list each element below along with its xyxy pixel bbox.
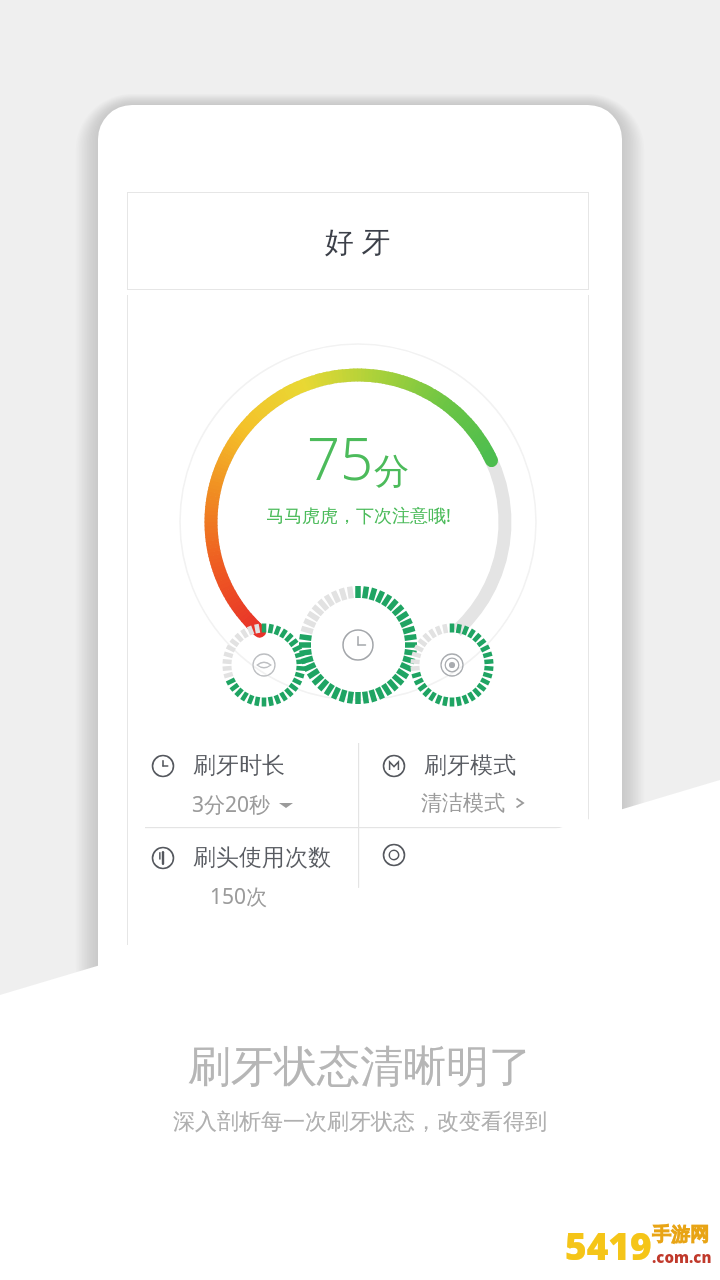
button[interactable]: 刷头使用次数 (127, 827, 358, 919)
staticText: 3分20秒 (192, 790, 271, 819)
staticText: 刷牙时长 (193, 751, 285, 780)
staticText: 马马虎虎，下次注意哦! (266, 503, 451, 528)
button[interactable]: 更多 (358, 827, 589, 919)
staticText: 75 (307, 418, 374, 497)
staticText: 刷牙模式 (424, 751, 516, 780)
staticText: .com.cn (652, 1247, 712, 1267)
staticText: 150次 (210, 882, 268, 911)
staticText: 清洁模式 (421, 790, 505, 816)
staticText: 好 牙 (325, 221, 391, 261)
staticText: 手游网 (652, 1223, 709, 1247)
staticText: 刷头使用次数 (193, 843, 331, 872)
button[interactable]: 刷牙时长 (127, 735, 358, 827)
button[interactable]: 刷牙模式 (358, 735, 589, 827)
staticText: 5419 (565, 1220, 652, 1270)
staticText: 刷牙状态清晰明了 (188, 1040, 532, 1094)
staticText: 深入剖析每一次刷牙状态，改变看得到 (173, 1108, 547, 1136)
staticText: 分 (374, 449, 409, 493)
